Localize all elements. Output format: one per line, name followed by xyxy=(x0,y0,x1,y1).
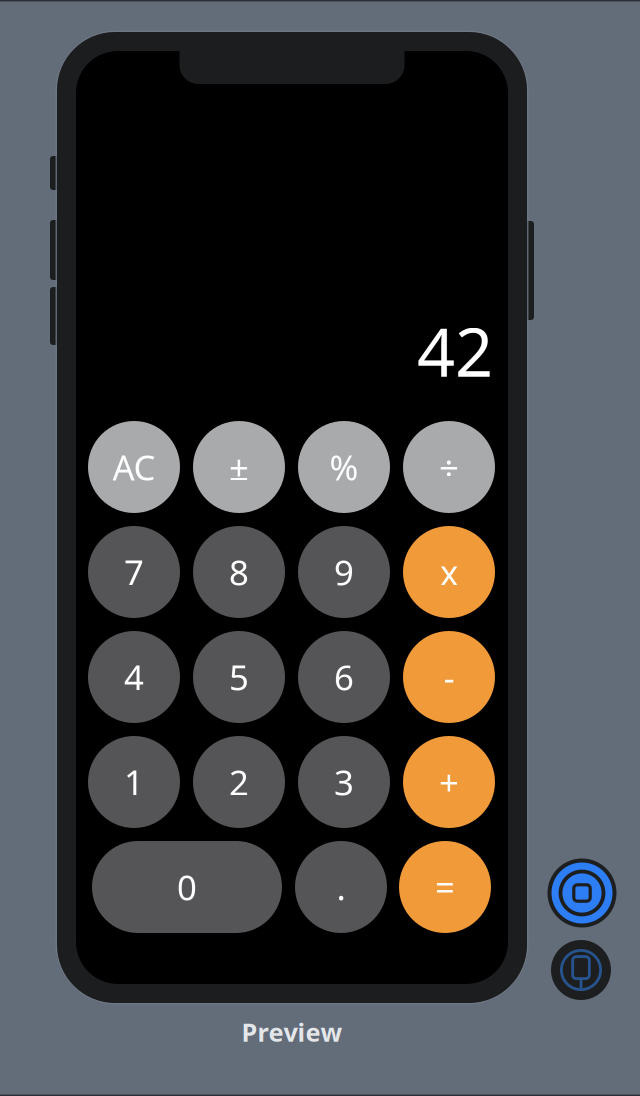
staticText: ± xyxy=(229,444,249,490)
staticText: ÷ xyxy=(439,444,459,490)
button[interactable]: 7 xyxy=(88,526,180,618)
staticText: 5 xyxy=(229,654,249,700)
staticText: Preview xyxy=(241,1015,342,1049)
button[interactable]: 4 xyxy=(88,631,180,723)
button[interactable]: 2 xyxy=(193,736,285,828)
button[interactable]: . xyxy=(295,841,387,933)
button[interactable]: 0 xyxy=(92,841,282,933)
staticText: = xyxy=(435,864,455,910)
staticText: AC xyxy=(112,444,155,490)
staticText: 3 xyxy=(334,759,354,805)
staticText: 7 xyxy=(124,549,144,595)
button[interactable]: 6 xyxy=(298,631,390,723)
staticText: % xyxy=(329,444,358,490)
staticText: 9 xyxy=(334,549,354,595)
staticText: 4 xyxy=(124,654,144,700)
staticText: 1 xyxy=(124,759,144,805)
button[interactable]: 9 xyxy=(298,526,390,618)
button[interactable]: Preview device settings xyxy=(551,940,611,1000)
button[interactable]: + xyxy=(403,736,495,828)
staticText: - xyxy=(443,654,454,700)
button[interactable]: - xyxy=(403,631,495,723)
staticText: 8 xyxy=(229,549,249,595)
button[interactable]: x xyxy=(403,526,495,618)
button[interactable]: ± xyxy=(193,421,285,513)
button[interactable]: 8 xyxy=(193,526,285,618)
button[interactable]: 5 xyxy=(193,631,285,723)
staticText: + xyxy=(439,759,459,805)
staticText: . xyxy=(336,864,345,910)
button[interactable]: 1 xyxy=(88,736,180,828)
button[interactable]: 3 xyxy=(298,736,390,828)
staticText: 0 xyxy=(177,864,197,910)
button[interactable]: ÷ xyxy=(403,421,495,513)
staticText: x xyxy=(440,549,458,595)
button[interactable]: = xyxy=(399,841,491,933)
staticText: 42 xyxy=(417,307,493,395)
staticText: 2 xyxy=(229,759,249,805)
button[interactable]: % xyxy=(298,421,390,513)
button[interactable]: AC xyxy=(88,421,180,513)
button[interactable]: Stop preview xyxy=(547,858,617,928)
staticText: 6 xyxy=(334,654,354,700)
